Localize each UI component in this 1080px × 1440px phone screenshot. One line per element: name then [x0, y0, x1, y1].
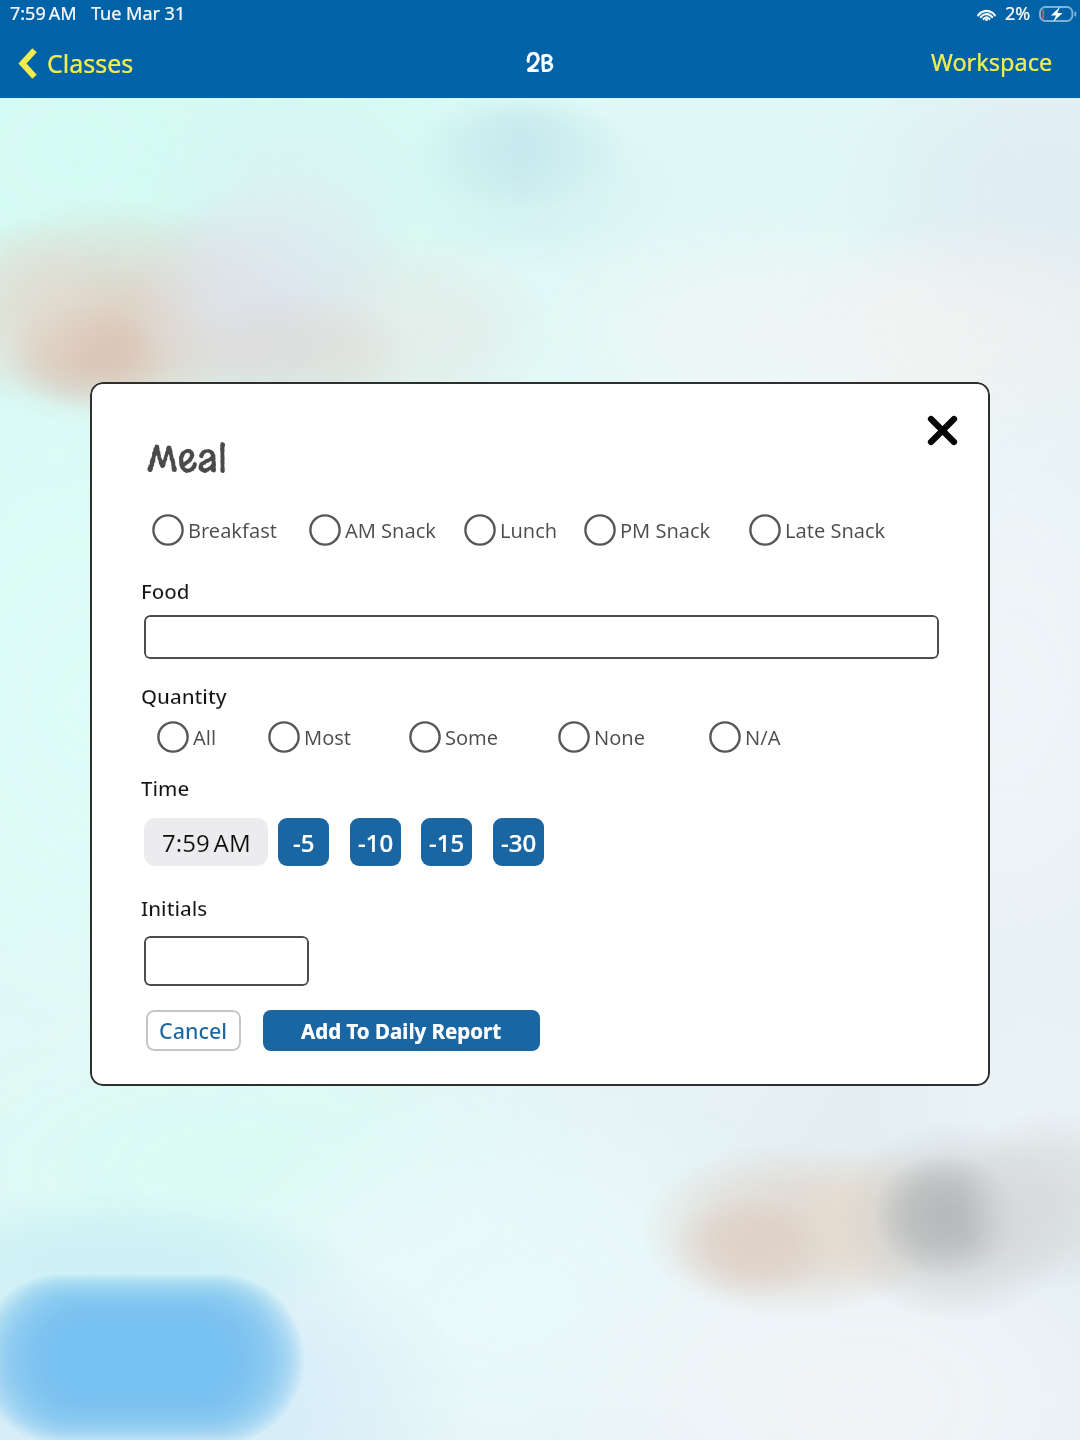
button[interactable]: 7:59 AM — [144, 818, 268, 866]
button[interactable]: -30 — [493, 818, 544, 866]
button[interactable]: Breakfast — [152, 514, 277, 546]
button[interactable]: Classes — [0, 38, 146, 88]
staticText: Time — [141, 774, 190, 802]
staticText: Quantity — [141, 682, 227, 710]
staticText: Meal — [147, 432, 227, 484]
button[interactable]: None — [558, 721, 645, 753]
staticText: 7:59 AM — [10, 1, 77, 26]
button[interactable]: -10 — [350, 818, 401, 866]
staticText: -15 — [429, 826, 465, 859]
button[interactable]: Lunch — [464, 514, 558, 546]
button[interactable] — [144, 936, 309, 986]
button[interactable] — [144, 615, 939, 659]
button[interactable]: AM Snack — [309, 514, 436, 546]
button[interactable]: Workspace — [901, 38, 1080, 86]
staticText: 7:59 AM — [162, 826, 251, 859]
staticText: Some — [445, 724, 499, 751]
button[interactable]: Some — [409, 721, 499, 753]
staticText: Lunch — [500, 517, 558, 544]
staticText: Cancel — [159, 1016, 228, 1045]
staticText: Classes — [47, 46, 134, 80]
staticText: Tue Mar 31 — [91, 1, 186, 26]
button[interactable]: Close — [920, 408, 964, 452]
button[interactable]: -15 — [421, 818, 472, 866]
button[interactable]: Late Snack — [749, 514, 886, 546]
staticText: Add To Daily Report — [301, 1017, 502, 1045]
staticText: 2% — [1005, 1, 1031, 26]
button[interactable]: PM Snack — [584, 514, 711, 546]
staticText: All — [193, 724, 217, 751]
staticText: Late Snack — [785, 517, 886, 544]
staticText: -5 — [293, 826, 315, 859]
staticText: AM Snack — [345, 517, 436, 544]
button[interactable]: Most — [268, 721, 352, 753]
staticText: -30 — [501, 826, 537, 859]
staticText: 2B — [526, 47, 554, 79]
staticText: Most — [304, 724, 352, 751]
button[interactable]: -5 — [278, 818, 329, 866]
staticText: Food — [141, 577, 190, 605]
button[interactable]: All — [157, 721, 217, 753]
staticText: PM Snack — [620, 517, 711, 544]
button[interactable]: Add To Daily Report — [263, 1010, 540, 1051]
button[interactable]: Cancel — [146, 1010, 241, 1051]
staticText: Initials — [141, 894, 208, 922]
staticText: N/A — [745, 724, 781, 751]
staticText: Breakfast — [188, 517, 277, 544]
button[interactable]: N/A — [709, 721, 781, 753]
staticText: -10 — [358, 826, 394, 859]
staticText: None — [594, 724, 645, 751]
